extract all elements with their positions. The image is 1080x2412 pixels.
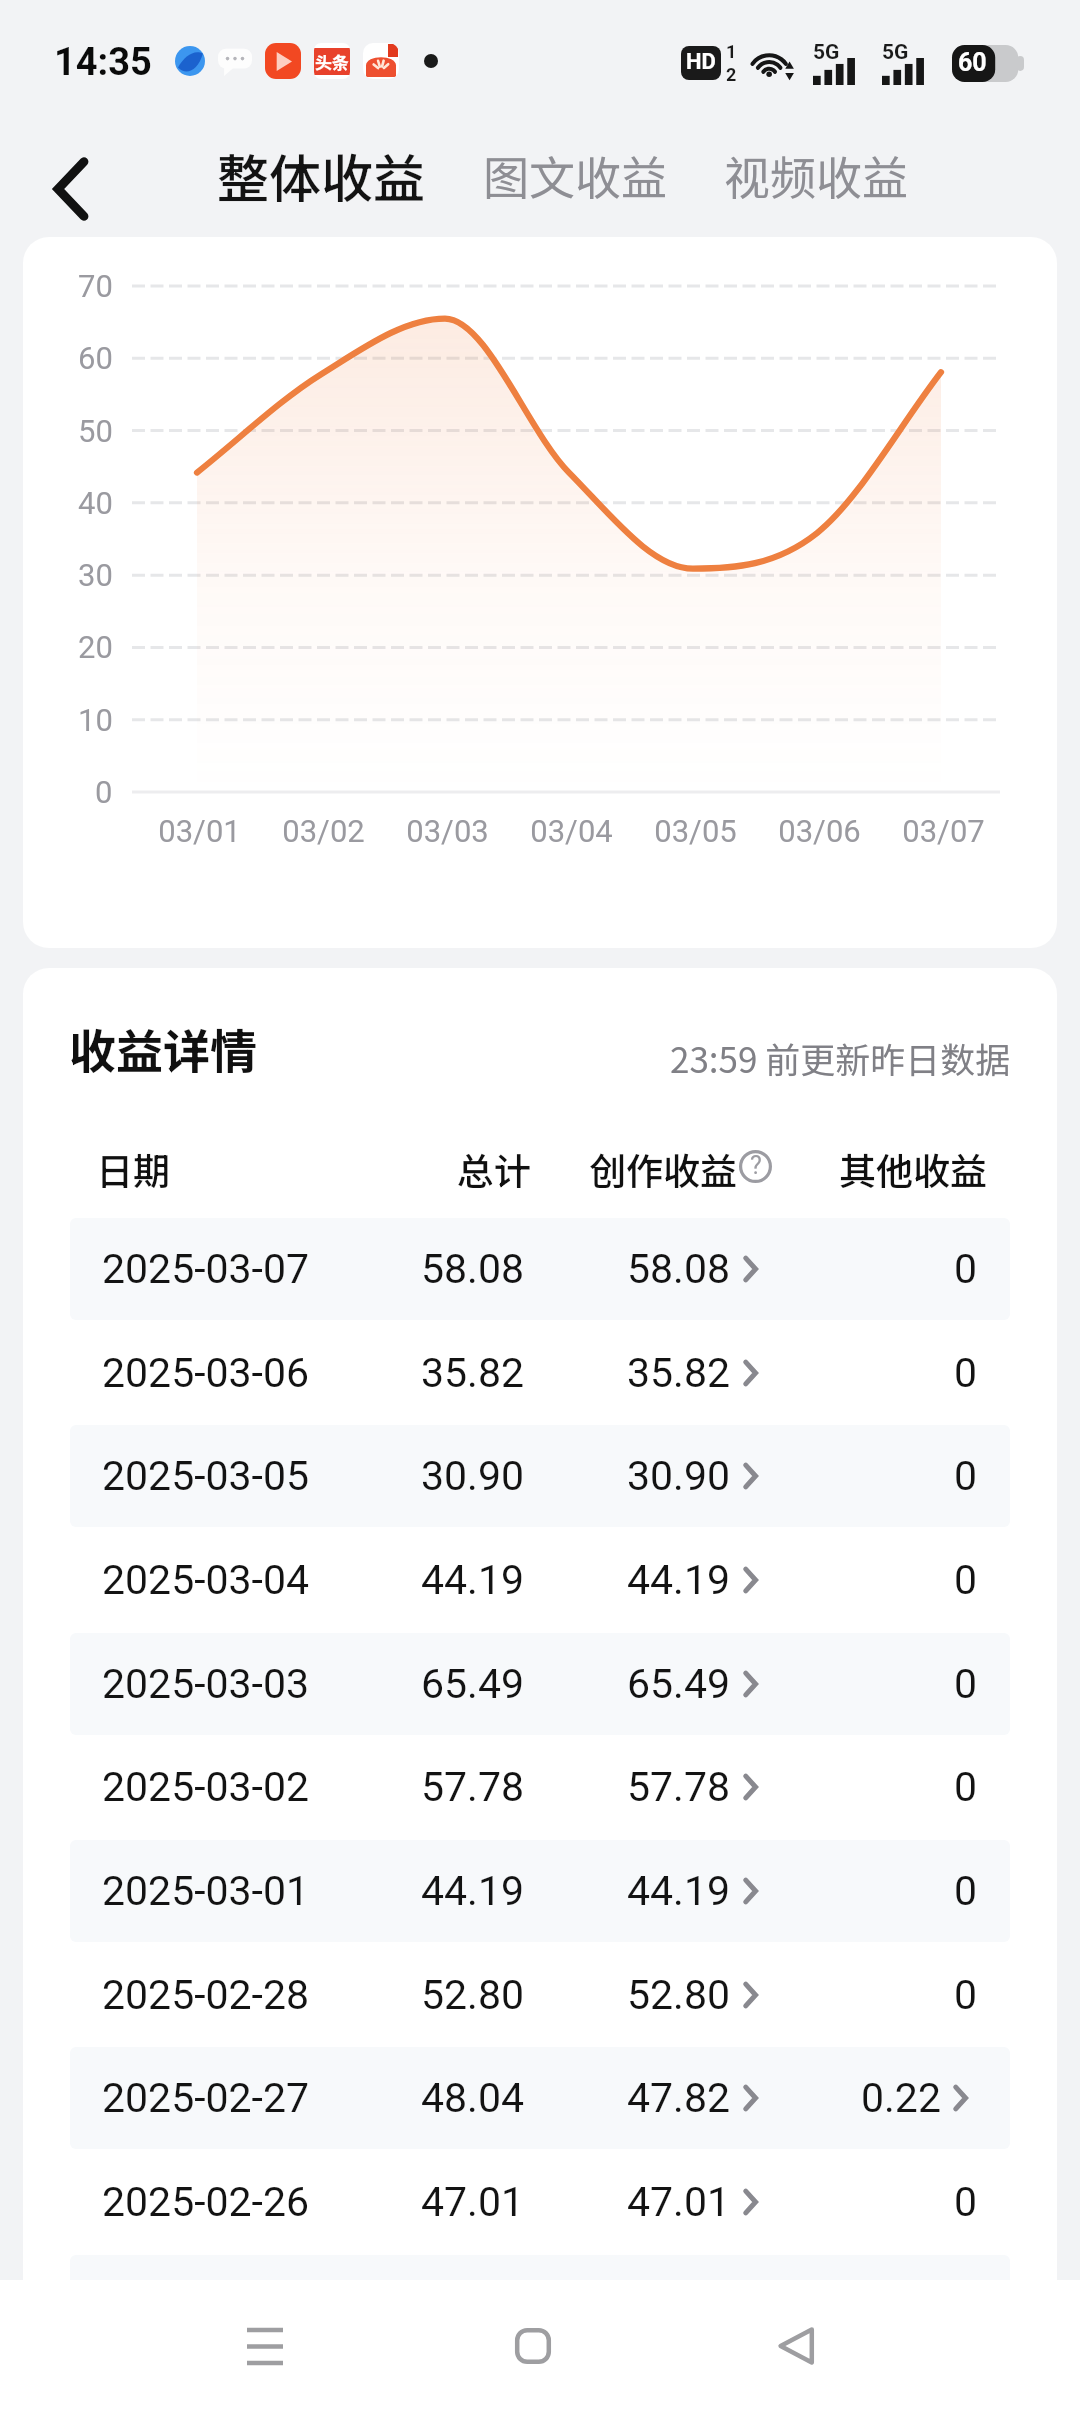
staticText: 2025-02-28	[102, 1971, 310, 2019]
staticText: 整体收益	[217, 138, 426, 213]
staticText: 总计	[457, 1142, 531, 1188]
button[interactable]: 2025-03-07	[70, 1218, 1010, 1320]
staticText: 57.78	[627, 1763, 730, 1811]
staticText: 0	[954, 1452, 978, 1500]
staticText: 0	[954, 1245, 978, 1293]
staticText: 2025-03-03	[102, 1660, 310, 1708]
staticText: 0	[954, 1556, 978, 1604]
button[interactable]: 图文收益	[469, 110, 681, 237]
button[interactable]: 2025-02-27	[70, 2047, 1010, 2149]
button[interactable]: Back	[711, 2290, 881, 2402]
button[interactable]: Back	[0, 110, 140, 237]
staticText: 03/02	[282, 813, 365, 849]
staticText: 2025-03-01	[102, 1867, 310, 1915]
staticText: 23:59 前更新昨日数据	[670, 1032, 1011, 1083]
staticText: 头条	[315, 49, 349, 74]
staticText: HD	[686, 49, 716, 75]
staticText: 0.22	[861, 2074, 941, 2122]
staticText: 10	[78, 702, 113, 738]
staticText: 0	[954, 1971, 978, 2019]
button[interactable]: 2025-03-03	[70, 1633, 1010, 1735]
staticText: 14:35	[54, 40, 152, 85]
staticText: 图文收益	[483, 142, 667, 209]
button[interactable]: 2025-03-06	[70, 1322, 1010, 1424]
staticText: 视频收益	[724, 142, 908, 209]
staticText: 5G	[882, 40, 909, 65]
staticText: 创作收益	[589, 1142, 737, 1188]
staticText: 2025-03-07	[102, 1245, 310, 1293]
staticText: 60	[958, 48, 987, 77]
staticText: 03/01	[158, 813, 241, 849]
staticText: 58.08	[421, 1245, 524, 1293]
staticText: 40	[78, 485, 113, 521]
staticText: 0	[954, 1763, 978, 1811]
staticText: 58.08	[627, 1245, 730, 1293]
staticText: 2	[726, 64, 737, 85]
button[interactable]: 2025-03-02	[70, 1736, 1010, 1838]
button[interactable]: 2025-02-25	[70, 2255, 1010, 2348]
staticText: ?	[750, 1151, 762, 1180]
staticText: 2025-02-27	[102, 2074, 310, 2122]
staticText: 70	[78, 268, 113, 304]
staticText: 35.82	[627, 1349, 730, 1397]
staticText: 44.19	[627, 1556, 730, 1604]
button[interactable]: 视频收益	[710, 110, 922, 237]
staticText: 03/04	[530, 813, 613, 849]
staticText: 03/05	[654, 813, 737, 849]
staticText: 30.90	[627, 1452, 730, 1500]
button[interactable]: 2025-03-01	[70, 1840, 1010, 1942]
staticText: 2025-02-26	[102, 2178, 310, 2226]
staticText: 52.80	[421, 1971, 524, 2019]
staticText: 20	[78, 629, 113, 665]
button[interactable]: 2025-03-04	[70, 1529, 1010, 1631]
staticText: 50	[78, 413, 113, 449]
staticText: 48.04	[421, 2074, 524, 2122]
staticText: 2025-03-02	[102, 1763, 310, 1811]
staticText: 47.01	[421, 2178, 524, 2226]
staticText: 1	[726, 41, 737, 62]
staticText: 65.49	[627, 1660, 730, 1708]
button[interactable]: Home	[448, 2290, 618, 2402]
staticText: 57.78	[421, 1763, 524, 1811]
staticText: 47.01	[627, 2178, 730, 2226]
staticText: 03/03	[406, 813, 489, 849]
button[interactable]: 整体收益	[203, 110, 440, 237]
staticText: 日期	[96, 1142, 170, 1188]
button[interactable]: 2025-03-05	[70, 1425, 1010, 1527]
staticText: 2025-03-05	[102, 1452, 310, 1500]
staticText: 03/06	[778, 813, 861, 849]
staticText: 65.49	[421, 1660, 524, 1708]
staticText: 0	[954, 2178, 978, 2226]
staticText: 03/07	[902, 813, 985, 849]
staticText: 35.82	[421, 1349, 524, 1397]
staticText: 2025-02-25	[102, 2282, 310, 2330]
staticText: 收益详情	[69, 1014, 257, 1082]
staticText: 0	[954, 1660, 978, 1708]
staticText: 0	[954, 1867, 978, 1915]
button[interactable]: Help	[739, 1150, 772, 1183]
staticText: 47.82	[627, 2074, 730, 2122]
staticText: 30.90	[421, 1452, 524, 1500]
staticText: 2025-03-04	[102, 1556, 310, 1604]
button[interactable]: 2025-02-28	[70, 1944, 1010, 2046]
staticText: 0	[95, 774, 113, 810]
staticText: 52.80	[627, 1971, 730, 2019]
button[interactable]: Recent apps	[180, 2290, 350, 2402]
staticText: 5G	[813, 40, 840, 65]
staticText: 2025-03-06	[102, 1349, 310, 1397]
staticText: 0	[954, 1349, 978, 1397]
staticText: 44.19	[627, 1867, 730, 1915]
staticText: 60	[78, 340, 113, 376]
staticText: 44.19	[421, 1556, 524, 1604]
button[interactable]: 2025-02-26	[70, 2151, 1010, 2253]
staticText: 30	[78, 557, 113, 593]
staticText: 44.19	[421, 1867, 524, 1915]
staticText: 其他收益	[839, 1142, 987, 1188]
